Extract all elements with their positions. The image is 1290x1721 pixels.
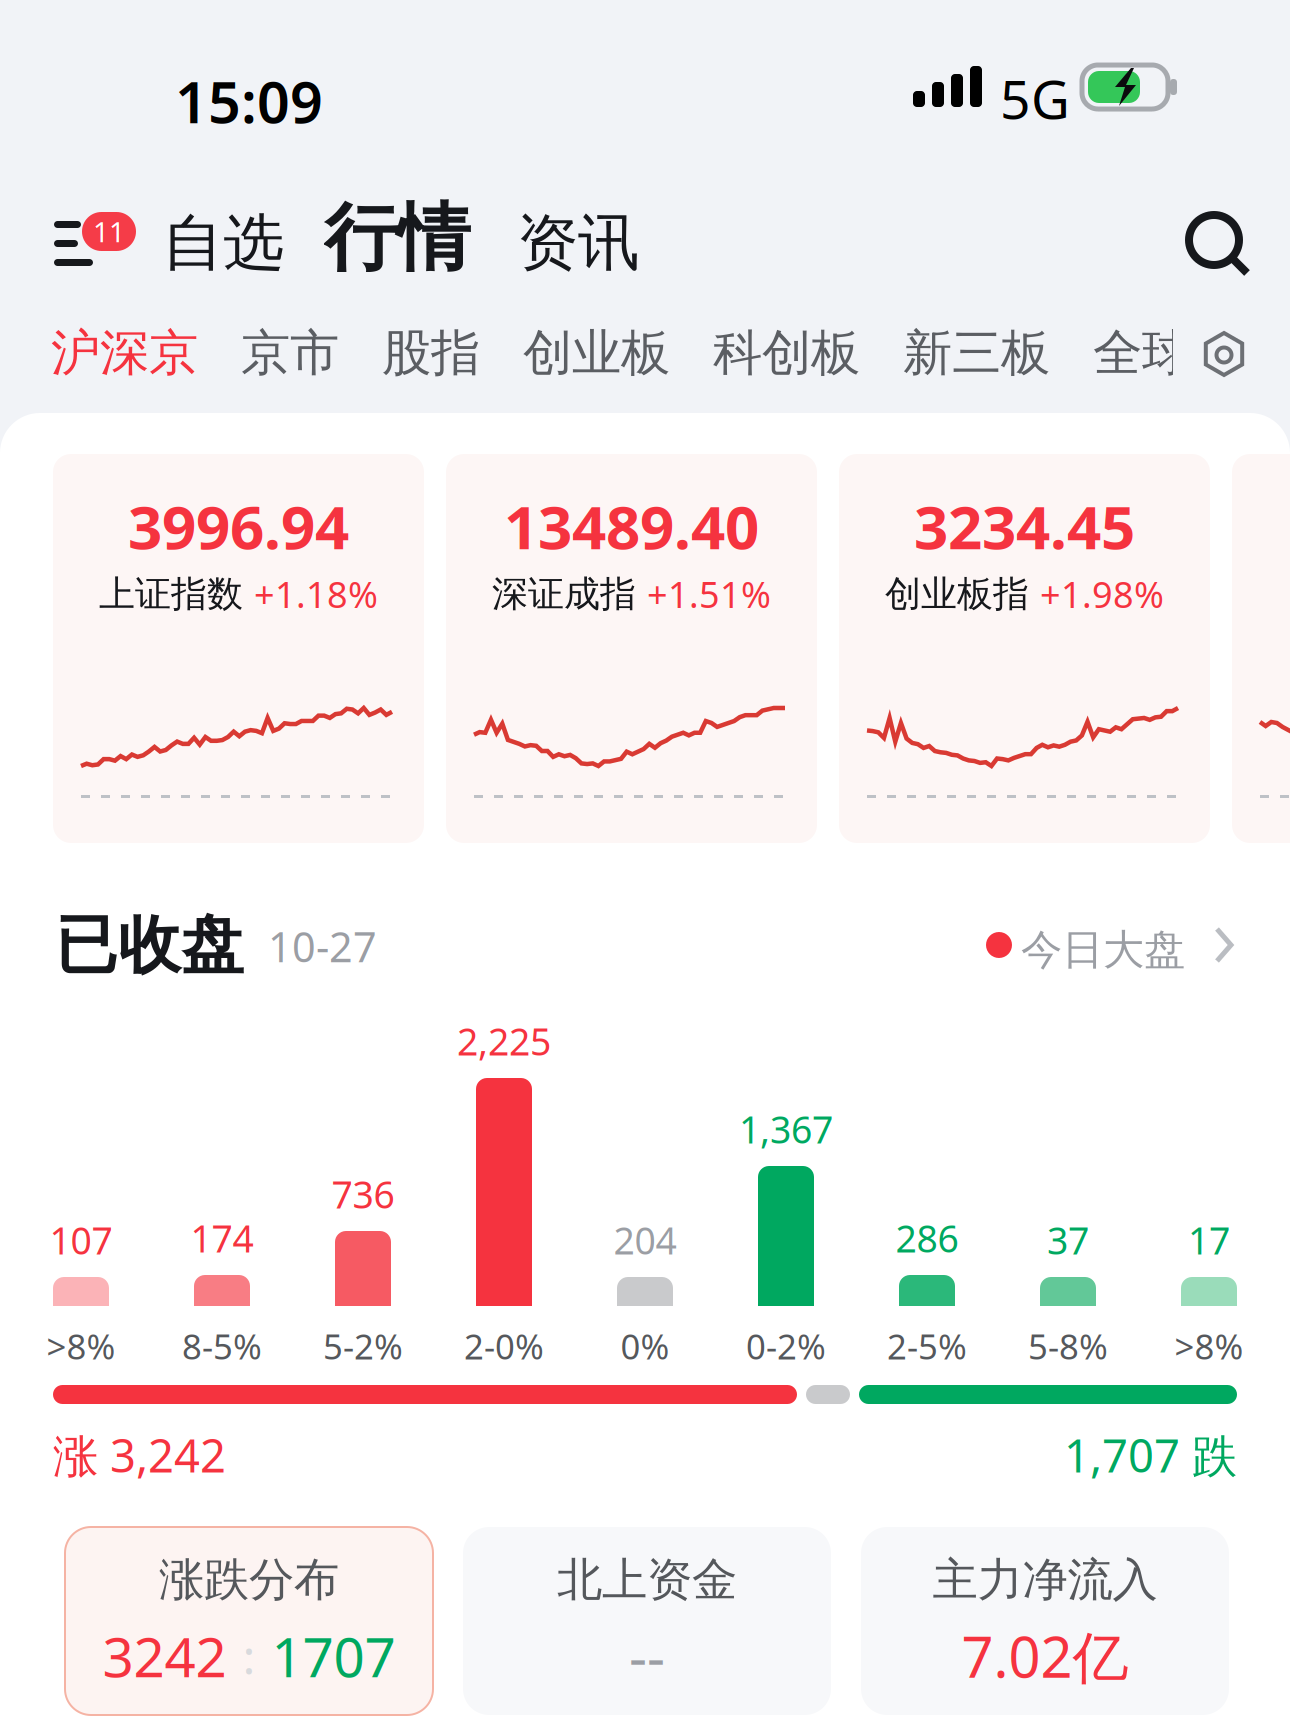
staticText: +1.51% [647,569,771,618]
staticText: 主力净流入 [932,1551,1157,1608]
button[interactable]: 股指 [382,322,480,384]
staticText: 174 [190,1213,253,1263]
staticText: 5G [1000,62,1070,135]
button[interactable]: Settings [1194,326,1254,382]
staticText: 204 [613,1215,676,1265]
button[interactable]: Search [1181,207,1259,285]
staticText: >8% [46,1322,115,1370]
staticText: 3996.94 [128,485,349,567]
staticText: 2-5% [887,1322,967,1370]
staticText: 1,707 跌 [1064,1424,1237,1486]
button[interactable]: 主力净流入 [861,1527,1229,1715]
staticText: 7.02亿 [961,1618,1128,1694]
staticText: 股指 [382,322,480,384]
button[interactable]: 新三板 [903,322,1050,384]
staticText: 1,367 [739,1104,833,1154]
staticText: +1.18% [254,569,378,618]
button[interactable]: 2300.12 [1232,454,1290,843]
button[interactable]: 自选 [163,206,283,280]
staticText: 涨 3,242 [53,1424,226,1486]
staticText: 2,225 [457,1016,551,1066]
staticText: 深证成指 [492,571,636,617]
staticText: 全球 [1093,322,1191,384]
staticText: 15:09 [175,62,323,140]
staticText: >8% [1174,1322,1243,1370]
staticText: 1707 [271,1619,395,1693]
staticText: 涨跌分布 [159,1551,339,1608]
button[interactable]: 行情 [321,196,473,280]
staticText: 13489.40 [504,485,759,567]
staticText: 286 [895,1213,958,1263]
staticText: -- [629,1618,665,1694]
staticText: 上证指数 [99,571,243,617]
button[interactable]: 3996.94 [53,454,424,843]
staticText: 创业板 [523,322,670,384]
button[interactable]: 北上资金 [463,1527,831,1715]
staticText: 0% [620,1322,669,1370]
button[interactable]: 全球 [1093,322,1191,384]
staticText: 8-5% [182,1322,262,1370]
button[interactable]: 科创板 [713,322,860,384]
staticText: 北上资金 [557,1551,737,1608]
staticText: 京市 [241,322,339,384]
button[interactable]: 京市 [241,322,339,384]
staticText: : [242,1623,255,1689]
staticText: 2-0% [464,1322,544,1370]
button[interactable]: Menu [54,212,154,288]
button[interactable]: 创业板 [523,322,670,384]
staticText: 5-2% [323,1322,403,1370]
button[interactable]: 今日大盘 [986,908,1240,972]
staticText: 11 [93,212,125,250]
staticText: 自选 [162,204,284,282]
button[interactable]: 涨跌分布 [65,1527,433,1715]
button[interactable]: 3234.45 [839,454,1210,843]
button[interactable]: 13489.40 [446,454,817,843]
staticText: 10-27 [268,918,377,974]
staticText: 科创板 [713,322,860,384]
staticText: 3234.45 [914,485,1135,567]
button[interactable]: 资讯 [518,206,638,280]
staticText: 0-2% [746,1322,826,1370]
staticText: 新三板 [903,322,1050,384]
staticText: 今日大盘 [1021,924,1185,976]
staticText: 行情 [324,192,470,284]
staticText: 736 [331,1169,394,1219]
staticText: 已收盘 [55,906,244,985]
staticText: 5-8% [1028,1322,1108,1370]
staticText: 沪深京 [51,322,198,384]
staticText: +1.98% [1040,569,1164,618]
button[interactable]: 沪深京 [51,322,198,384]
staticText: 创业板指 [885,571,1029,617]
staticText: 17 [1188,1215,1230,1265]
staticText: 资讯 [517,204,639,282]
staticText: 3242 [102,1619,226,1693]
staticText: 37 [1047,1215,1089,1265]
staticText: 107 [49,1215,112,1265]
